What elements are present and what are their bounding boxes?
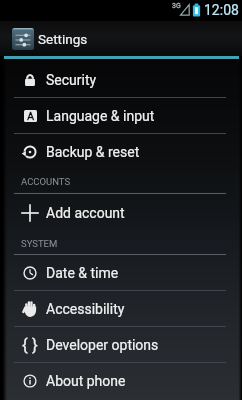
staticText: { } bbox=[22, 335, 38, 355]
staticText: Add account bbox=[46, 205, 125, 221]
staticText: Settings bbox=[38, 31, 88, 47]
button[interactable]: Settings bbox=[0, 21, 242, 56]
staticText: ACCOUNTS bbox=[21, 176, 71, 187]
staticText: Backup & reset bbox=[46, 144, 140, 160]
button[interactable]: { } bbox=[0, 327, 242, 362]
staticText: 12:08 bbox=[204, 2, 239, 18]
staticText: Developer options bbox=[46, 337, 159, 353]
button[interactable]: A bbox=[0, 98, 242, 133]
button[interactable]: Security bbox=[0, 62, 242, 97]
button[interactable]: Accessibility bbox=[0, 291, 242, 326]
staticText: SYSTEM bbox=[21, 238, 58, 249]
staticText: Language & input bbox=[46, 108, 155, 124]
button[interactable]: About phone bbox=[0, 363, 242, 398]
staticText: Date & time bbox=[46, 265, 119, 281]
staticText: A bbox=[27, 110, 35, 122]
staticText: Accessibility bbox=[46, 301, 125, 317]
button[interactable]: Add account bbox=[0, 194, 242, 231]
staticText: 3G bbox=[172, 2, 181, 10]
staticText: Security bbox=[46, 72, 97, 88]
button[interactable]: Backup & reset bbox=[0, 134, 242, 169]
button[interactable]: Date & time bbox=[0, 255, 242, 290]
staticText: About phone bbox=[46, 373, 126, 389]
